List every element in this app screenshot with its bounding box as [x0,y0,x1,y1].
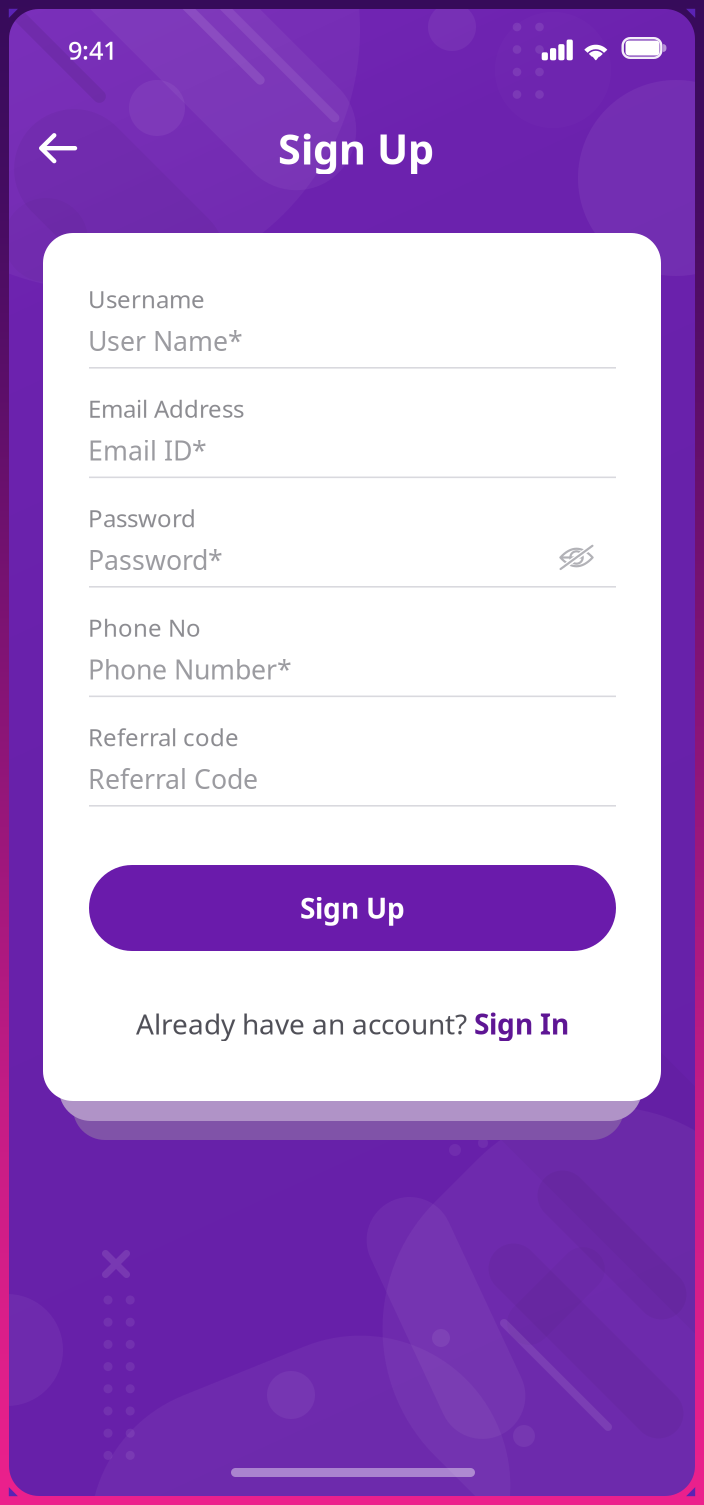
staticText: Already have an account? [136,1005,474,1042]
button[interactable]: Show password [547,533,606,582]
staticText: Sign Up [278,121,434,176]
staticText: Referral Code [88,761,258,796]
staticText: Email Address [88,392,244,424]
staticText: Sign Up [300,889,405,927]
staticText: Username [88,283,205,315]
staticText: Phone No [88,611,201,643]
staticText: Password [88,502,196,534]
button[interactable]: Sign Up [89,865,616,951]
staticText: Sign In [474,1005,569,1042]
staticText: 9:41 [68,33,117,67]
button[interactable]: Back [19,113,97,184]
staticText: Email ID* [88,432,207,468]
staticText: Password* [88,542,223,577]
staticText: Phone Number* [88,651,292,687]
button[interactable]: Sign In [474,1005,569,1042]
staticText: Referral code [88,721,239,753]
staticText: User Name* [88,323,243,358]
